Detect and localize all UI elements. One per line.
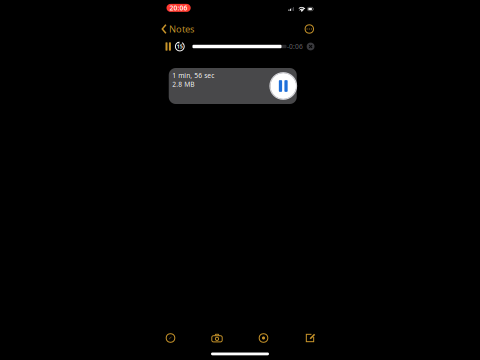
staticText: -0:06 xyxy=(287,42,303,51)
button[interactable]: Camera xyxy=(194,330,240,346)
staticText: Notes xyxy=(169,23,194,35)
staticText: 1 min, 56 sec xyxy=(172,71,214,80)
button[interactable]: Pause recording xyxy=(269,72,297,100)
button[interactable]: Pause xyxy=(163,39,173,54)
button[interactable]: Skip back 15 seconds xyxy=(173,38,187,55)
button[interactable]: New note xyxy=(287,330,333,346)
staticText: 20:06 xyxy=(170,3,188,12)
staticText: 15 xyxy=(177,43,183,50)
staticText: 2.8 MB xyxy=(172,80,194,89)
button[interactable]: Close playback bar xyxy=(303,40,314,53)
button[interactable]: Markup xyxy=(147,330,194,346)
button[interactable]: Notes xyxy=(161,18,200,37)
button[interactable]: Record audio xyxy=(240,330,287,346)
button[interactable]: More options xyxy=(302,20,316,35)
